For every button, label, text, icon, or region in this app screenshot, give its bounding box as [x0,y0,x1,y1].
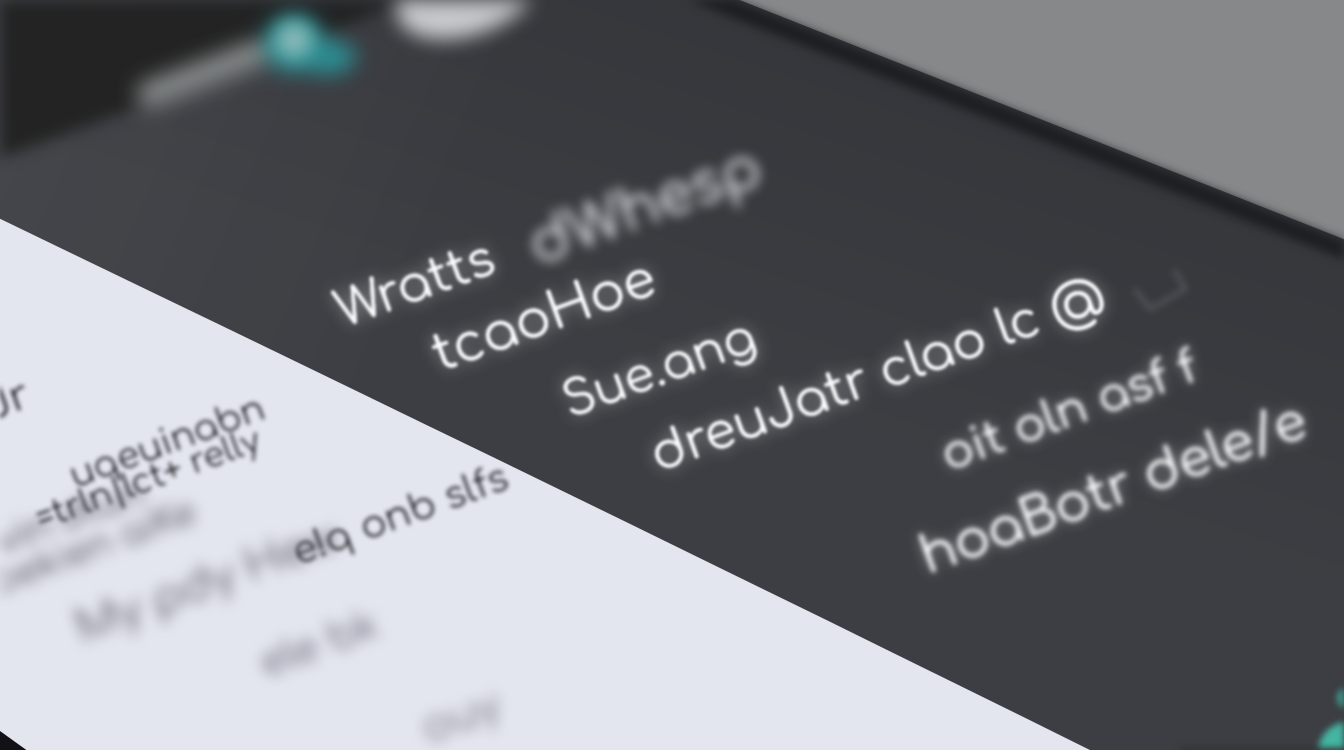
button[interactable]: Conversation row [900,420,1300,550]
button[interactable]: Whatsapp notification [300,250,770,380]
button[interactable]: Conversation row [620,420,1140,560]
button[interactable]: Note card [0,380,520,580]
button[interactable]: Toggle [248,8,344,88]
button[interactable]: Conversation row [520,370,970,500]
button[interactable]: Conversation row [880,520,1340,670]
button[interactable]: Message preview row [400,320,840,450]
button[interactable]: Compose [1300,706,1344,750]
button[interactable]: Note card [60,560,580,750]
button[interactable]: Mark as read [1110,255,1210,325]
